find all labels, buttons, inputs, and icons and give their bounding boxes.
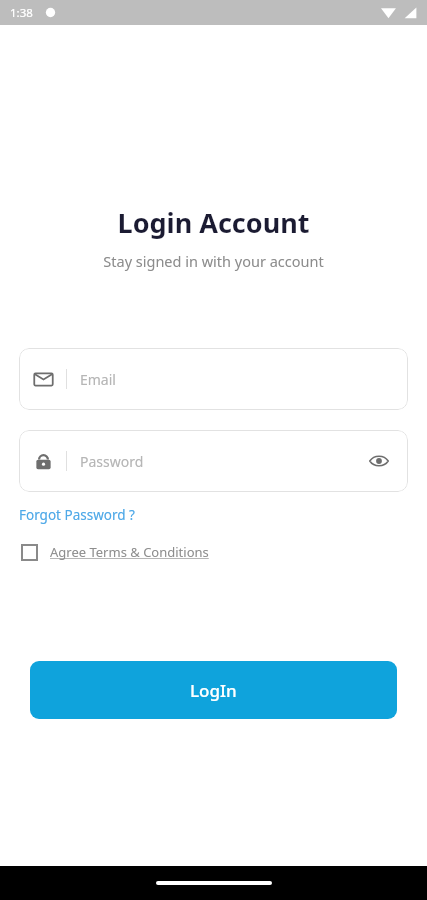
staticText: Password — [80, 452, 364, 471]
button[interactable]: Forgot Password ? — [19, 504, 135, 526]
staticText: Agree Terms & Conditions — [50, 543, 209, 561]
staticText: LogIn — [190, 679, 237, 702]
staticText: Login Account — [0, 204, 427, 241]
button[interactable]: LogIn — [30, 661, 397, 719]
staticText: 1:38 — [10, 5, 33, 21]
button[interactable]: Email — [19, 348, 408, 410]
button[interactable]: Password — [19, 430, 408, 492]
button[interactable]: Agree Terms & Conditions — [19, 540, 211, 564]
staticText: Forgot Password ? — [19, 506, 135, 524]
button[interactable]: Show password — [364, 446, 394, 476]
staticText: Email — [80, 370, 394, 389]
staticText: Stay signed in with your account — [0, 251, 427, 271]
